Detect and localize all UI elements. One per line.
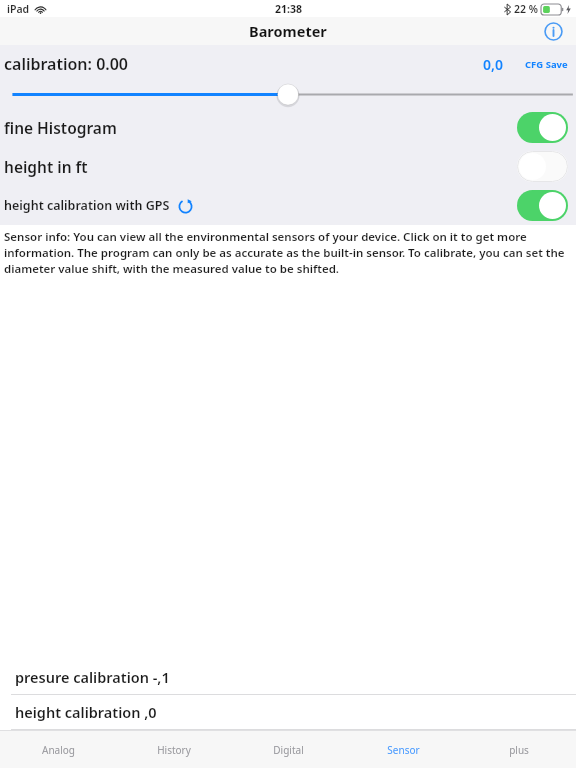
button[interactable]: Analog <box>0 731 116 768</box>
button[interactable]: height in ft off <box>517 151 568 182</box>
staticText: History <box>157 743 191 757</box>
staticText: Digital <box>273 743 304 757</box>
staticText: presure calibration -,1 <box>15 667 170 687</box>
staticText: calibration: 0.00 <box>4 53 129 75</box>
staticText: CFG Save <box>525 58 568 71</box>
button[interactable]: History <box>116 731 231 768</box>
staticText: plus <box>509 743 529 757</box>
button[interactable]: fine Histogram on <box>517 112 568 143</box>
button[interactable]: Digital <box>231 731 346 768</box>
button[interactable]: Info <box>540 18 566 44</box>
button[interactable]: height calibration ,0 <box>0 695 576 729</box>
staticText: iPad <box>7 2 30 16</box>
staticText: height calibration ,0 <box>15 702 157 722</box>
button[interactable]: Refresh GPS height calibration <box>172 192 198 218</box>
staticText: 0,0 <box>483 55 503 74</box>
staticText: height calibration with GPS <box>4 197 170 214</box>
staticText: Analog <box>42 743 75 757</box>
button[interactable]: height calibration with GPS on <box>517 190 568 221</box>
button[interactable]: plus <box>461 731 576 768</box>
staticText: 21:38 <box>275 2 302 16</box>
button[interactable]: Sensor <box>346 731 461 768</box>
staticText: Sensor info: You can view all the enviro… <box>4 229 572 277</box>
button[interactable]: Calibration slider <box>0 83 576 108</box>
staticText: height in ft <box>4 156 88 177</box>
staticText: Barometer <box>249 21 327 41</box>
button[interactable]: 0,0 <box>483 55 503 74</box>
staticText: Sensor <box>387 743 420 757</box>
button[interactable]: CFG Save <box>525 58 568 71</box>
staticText: 22 % <box>514 2 538 16</box>
button[interactable]: height in ft <box>0 147 576 186</box>
staticText: fine Histogram <box>4 117 117 138</box>
button[interactable]: height calibration with GPS <box>0 186 576 224</box>
button[interactable]: presure calibration -,1 <box>0 660 576 694</box>
button[interactable]: fine Histogram <box>0 108 576 147</box>
